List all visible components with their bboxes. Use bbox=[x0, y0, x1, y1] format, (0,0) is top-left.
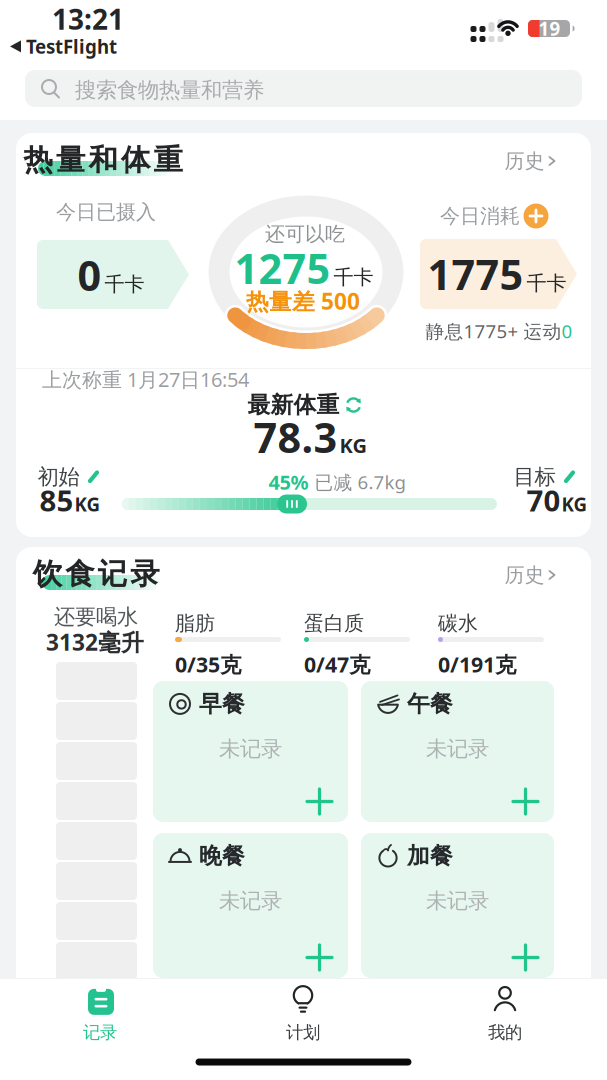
staticText: 19 bbox=[538, 16, 560, 41]
staticText: 计划 bbox=[286, 1022, 320, 1043]
staticText: 未记录 bbox=[219, 736, 282, 762]
staticText: 搜索食物热量和营养 bbox=[75, 77, 264, 103]
staticText: 已减 6.7kg bbox=[314, 470, 405, 494]
staticText: 热量和体重 bbox=[23, 142, 182, 178]
staticText: 今日消耗 bbox=[440, 204, 520, 228]
staticText: 初始 bbox=[37, 464, 79, 490]
button[interactable]: 编辑初始体重 bbox=[86, 469, 100, 484]
staticText: 未记录 bbox=[426, 888, 489, 914]
staticText: 还可以吃 bbox=[265, 222, 345, 246]
staticText: 加餐 bbox=[407, 842, 453, 870]
staticText: 热量差 500 bbox=[246, 286, 360, 316]
button[interactable]: 历史 bbox=[504, 149, 557, 173]
staticText: 今日已摄入 bbox=[56, 200, 156, 224]
staticText: 晚餐 bbox=[199, 842, 245, 870]
button[interactable]: 搜索食物热量和营养 bbox=[25, 70, 582, 107]
staticText: 0/47克 bbox=[304, 650, 370, 678]
button[interactable]: 历史 bbox=[504, 563, 557, 587]
staticText: KG bbox=[339, 432, 366, 459]
staticText: 45% bbox=[268, 469, 308, 495]
staticText: KG bbox=[74, 492, 100, 516]
staticText: 记录 bbox=[83, 1022, 117, 1043]
staticText: 我的 bbox=[488, 1022, 522, 1043]
staticText: 70 bbox=[526, 480, 560, 519]
staticText: 1775 bbox=[427, 247, 523, 301]
staticText: 碳水 bbox=[438, 611, 478, 636]
button[interactable]: 午餐 bbox=[361, 681, 554, 822]
staticText: 还要喝水 bbox=[54, 604, 138, 630]
staticText: 蛋白质 bbox=[304, 611, 364, 636]
staticText: 未记录 bbox=[426, 736, 489, 762]
staticText: 78.3 bbox=[253, 410, 337, 464]
staticText: 85 bbox=[39, 480, 73, 519]
staticText: 13:21 bbox=[52, 0, 124, 38]
staticText: 1275 bbox=[234, 241, 330, 295]
staticText: 3132毫升 bbox=[46, 627, 144, 657]
staticText: 0/35克 bbox=[175, 650, 241, 678]
button[interactable]: 记录 bbox=[83, 985, 117, 1043]
staticText: 脂肪 bbox=[175, 611, 215, 636]
staticText: 历史 bbox=[504, 149, 544, 173]
staticText: 0/191克 bbox=[438, 650, 516, 678]
button[interactable]: 编辑目标体重 bbox=[562, 469, 576, 484]
button[interactable]: 晚餐 bbox=[153, 833, 348, 978]
button[interactable]: 计划 bbox=[286, 985, 320, 1043]
button[interactable]: 体重进度 bbox=[277, 494, 307, 513]
staticText: 饮食记录 bbox=[33, 556, 159, 592]
staticText: 最新体重 bbox=[247, 391, 339, 419]
button[interactable]: 早餐 bbox=[153, 681, 348, 822]
staticText: 静息1775+ 运动 bbox=[425, 319, 561, 343]
staticText: 上次称重 1月27日16:54 bbox=[42, 366, 249, 393]
staticText: 目标 bbox=[513, 464, 555, 490]
staticText: KG bbox=[561, 492, 587, 516]
staticText: 千卡 bbox=[333, 265, 373, 290]
staticText: 千卡 bbox=[526, 271, 566, 296]
button[interactable]: 我的 bbox=[488, 985, 522, 1043]
staticText: 0 bbox=[561, 319, 572, 343]
staticText: 未记录 bbox=[219, 888, 282, 914]
staticText: 千卡 bbox=[104, 272, 144, 297]
staticText: 历史 bbox=[504, 563, 544, 587]
button[interactable]: 加餐 bbox=[361, 833, 554, 978]
staticText: 午餐 bbox=[407, 690, 453, 718]
button[interactable]: 刷新体重 bbox=[344, 396, 362, 414]
button[interactable]: 添加运动 bbox=[523, 203, 548, 228]
staticText: 早餐 bbox=[199, 690, 245, 718]
staticText: TestFlight bbox=[26, 34, 117, 59]
staticText: 0 bbox=[77, 248, 101, 302]
